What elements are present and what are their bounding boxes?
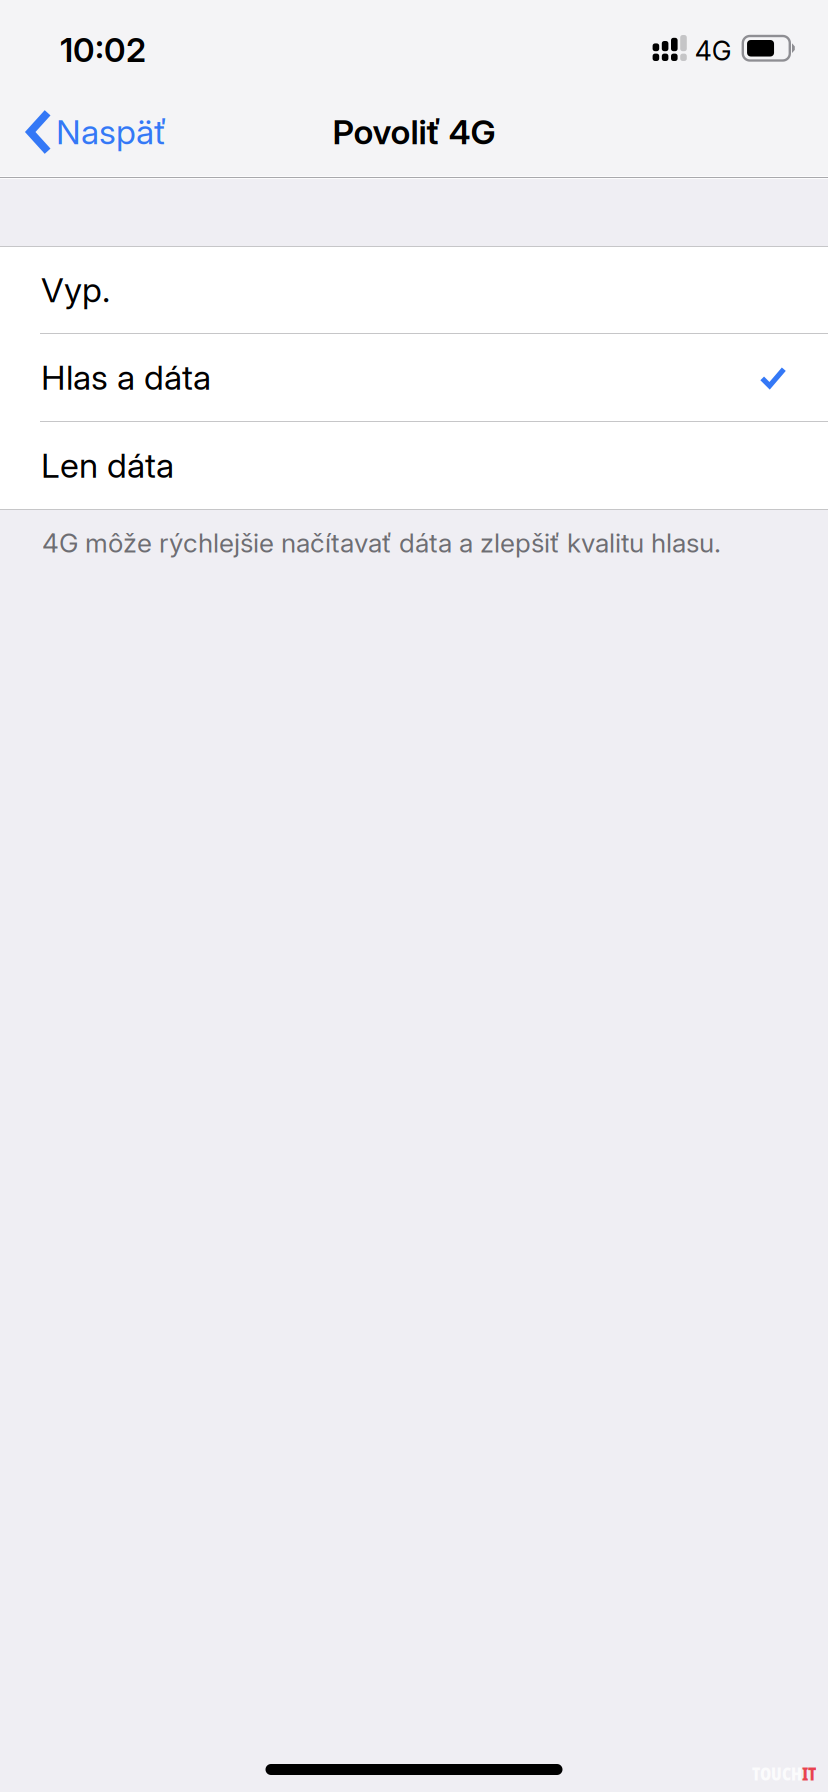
staticText: IT	[802, 1763, 816, 1785]
staticText: Hlas a dáta	[41, 357, 211, 398]
button[interactable]: Vyp.	[0, 247, 828, 334]
staticText: 4G	[695, 35, 732, 67]
staticText: TOUCH	[752, 1763, 802, 1785]
button[interactable]: Hlas a dáta	[0, 334, 828, 422]
staticText: 10:02	[60, 30, 146, 70]
staticText: Naspäť	[56, 111, 166, 152]
button[interactable]: Len dáta	[0, 422, 828, 509]
staticText: Len dáta	[41, 445, 174, 486]
button[interactable]: Naspäť	[0, 88, 184, 176]
staticText: Povoliť 4G	[332, 111, 495, 152]
staticText: Vyp.	[41, 269, 110, 310]
staticText: 4G môže rýchlejšie načítavať dáta a zlep…	[42, 527, 721, 559]
